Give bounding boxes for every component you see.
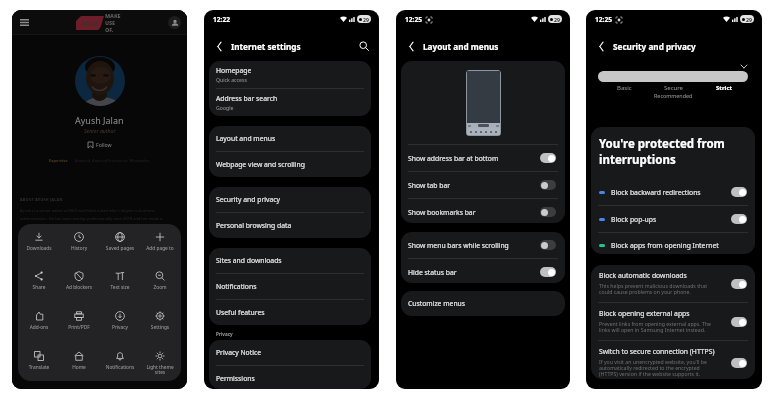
button[interactable]: Share — [20, 271, 58, 291]
button[interactable]: Notifications — [209, 274, 371, 299]
button[interactable]: Useful features — [209, 300, 371, 325]
staticText: Saved pages — [101, 245, 139, 252]
staticText: MUO — [82, 19, 98, 27]
button[interactable]: Privacy Notice — [209, 340, 371, 365]
staticText: Notifications — [101, 364, 139, 371]
button[interactable]: Back — [212, 39, 226, 53]
button[interactable]: Account — [168, 16, 181, 29]
staticText: Print/PDF — [60, 324, 98, 331]
staticText: Add-ons — [20, 324, 58, 331]
button[interactable]: Zoom — [141, 271, 179, 291]
button[interactable]: Show bookmarks bar — [401, 199, 565, 223]
staticText: Security and privacy — [216, 195, 280, 204]
button[interactable]: Show address bar at bottom — [401, 145, 565, 171]
staticText: Webpage view and scrolling — [216, 160, 305, 169]
button[interactable]: Home — [60, 351, 98, 371]
staticText: Customize menus — [408, 299, 466, 308]
button[interactable]: Add page to — [141, 232, 179, 252]
button[interactable]: Saved pages — [101, 232, 139, 252]
staticText: 12:25 — [595, 15, 612, 24]
staticText: USE — [105, 19, 115, 26]
button[interactable]: Light theme sites — [141, 351, 179, 376]
staticText: Strict — [716, 84, 733, 92]
button[interactable]: Sites and downloads — [209, 248, 371, 273]
button[interactable]: Add-ons — [20, 311, 58, 331]
button[interactable]: Switch to secure connection (HTTPS) — [591, 341, 755, 379]
staticText: Privacy — [216, 331, 233, 337]
button[interactable]: Back — [594, 39, 608, 53]
staticText: Share — [20, 284, 58, 291]
button[interactable]: Hide status bar — [401, 259, 565, 283]
staticText: You're protected from interruptions — [599, 136, 725, 168]
staticText: Basic — [617, 84, 632, 92]
button[interactable]: Search — [357, 39, 371, 53]
staticText: This helps prevent malicious downloads t… — [599, 282, 717, 296]
button[interactable]: Back — [404, 39, 418, 53]
staticText: Ad blockers — [60, 284, 98, 291]
staticText: 29 — [554, 16, 560, 23]
staticText: Block automatic downloads — [599, 271, 687, 280]
button[interactable]: Block backward redirections — [591, 179, 755, 205]
staticText: Settings — [141, 324, 179, 331]
staticText: Zoom — [141, 284, 179, 291]
staticText: 12:22 — [213, 15, 230, 24]
staticText: Permissions — [216, 374, 255, 381]
button[interactable]: Webpage view and scrolling — [209, 152, 371, 177]
staticText: Expertise — [49, 158, 68, 163]
button[interactable]: Permissions — [209, 366, 371, 389]
staticText: Text size — [101, 284, 139, 291]
button[interactable]: Menu — [17, 15, 31, 29]
button[interactable]: Text size — [101, 271, 139, 291]
staticText: Block backward redirections — [611, 188, 731, 197]
staticText: Show tab bar — [408, 181, 540, 190]
staticText: Light theme sites — [141, 364, 179, 376]
button[interactable]: Print/PDF — [60, 311, 98, 331]
staticText: Block pop-ups — [611, 215, 731, 224]
staticText: Privacy Notice — [216, 348, 262, 357]
staticText: Prevent links from opening external apps… — [599, 320, 717, 334]
staticText: Show address bar at bottom — [408, 154, 540, 163]
staticText: ABOUT AYUSH JALAN — [20, 197, 63, 202]
button[interactable]: Homepage — [209, 61, 371, 88]
staticText: 12:25 — [405, 15, 422, 24]
staticText: Layout and menus — [423, 41, 499, 52]
button[interactable]: Downloads — [20, 232, 58, 252]
button[interactable]: Notifications — [101, 351, 139, 371]
staticText: History — [60, 245, 98, 252]
staticText: Google — [216, 104, 234, 111]
button[interactable]: Customize menus — [401, 291, 565, 316]
button[interactable]: Show tab bar — [401, 172, 565, 198]
button[interactable]: Security and privacy — [209, 187, 371, 212]
staticText: Homepage — [216, 66, 252, 75]
button[interactable]: Ad blockers — [60, 271, 98, 291]
button[interactable]: History — [60, 232, 98, 252]
staticText: Secure — [664, 84, 684, 92]
button[interactable]: Personal browsing data — [209, 213, 371, 238]
button[interactable]: Settings — [141, 311, 179, 331]
staticText: Layout and menus — [216, 134, 276, 143]
button[interactable]: Translate — [20, 351, 58, 371]
button[interactable]: Address bar search — [209, 89, 371, 116]
button[interactable]: Layout and menus — [209, 126, 371, 151]
staticText: Notifications — [216, 282, 257, 291]
staticText: If you visit an unencrypted website, you… — [599, 358, 717, 378]
button[interactable]: Show menu bars while scrolling — [401, 232, 565, 258]
staticText: Address bar search — [216, 94, 278, 103]
staticText: Sites and downloads — [216, 256, 282, 265]
button[interactable]: Block apps from opening Internet — [591, 233, 755, 254]
button[interactable]: Follow — [86, 139, 114, 150]
button[interactable]: Block opening external apps — [591, 303, 755, 340]
staticText: 29 — [363, 16, 369, 23]
staticText: Personal browsing data — [216, 221, 292, 230]
staticText: Quick access — [216, 76, 247, 83]
staticText: MAKE — [105, 12, 121, 19]
button[interactable]: Block pop-ups — [591, 206, 755, 232]
button[interactable]: Block automatic downloads — [591, 265, 755, 302]
staticText: Android, Android Enterprise, Wearables — [75, 158, 150, 163]
staticText: Recommended — [654, 92, 693, 99]
staticText: Show bookmarks bar — [408, 208, 540, 217]
staticText: Block opening external apps — [599, 309, 690, 318]
staticText: Translate — [20, 364, 58, 371]
button[interactable]: Privacy — [101, 311, 139, 331]
staticText: Senior author — [84, 127, 116, 134]
